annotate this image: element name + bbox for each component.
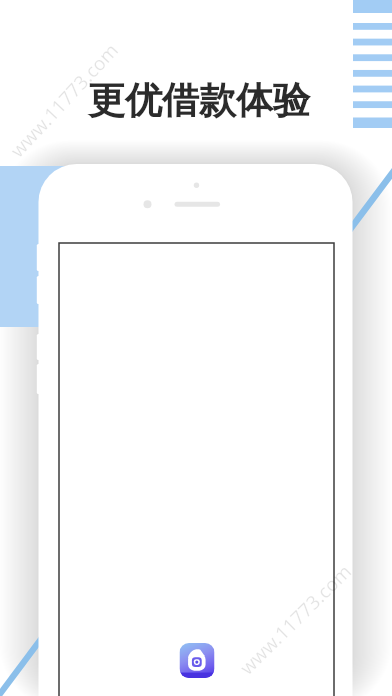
button[interactable]: App icon (0, 0, 392, 696)
